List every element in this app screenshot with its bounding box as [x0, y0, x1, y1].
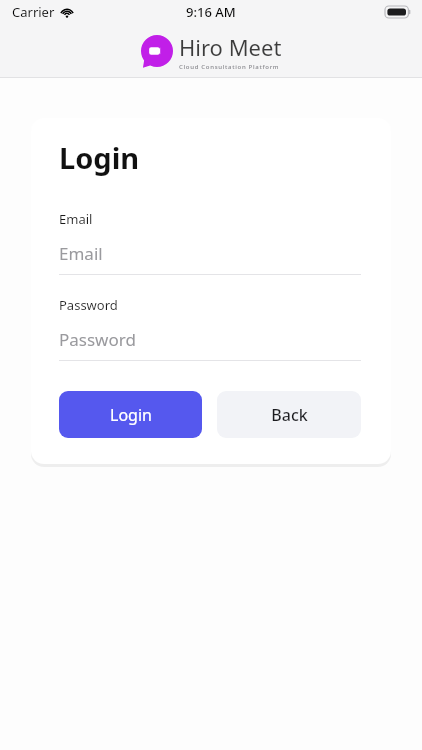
staticText: Email — [59, 210, 93, 228]
staticText: Hiro Meet — [179, 32, 282, 62]
staticText: Email — [59, 242, 103, 265]
staticText: Carrier — [12, 3, 55, 21]
staticText: Login — [59, 138, 140, 177]
button[interactable]: Login — [59, 391, 202, 438]
staticText: 9:16 AM — [186, 3, 236, 21]
button[interactable]: Email — [59, 210, 361, 275]
staticText: Password — [59, 328, 136, 351]
staticText: Cloud Consultation Platform — [179, 63, 280, 71]
button[interactable]: Back — [217, 391, 361, 438]
staticText: Back — [271, 404, 308, 426]
staticText: Password — [59, 296, 118, 314]
staticText: Login — [110, 404, 152, 426]
button[interactable]: Password — [59, 296, 361, 361]
